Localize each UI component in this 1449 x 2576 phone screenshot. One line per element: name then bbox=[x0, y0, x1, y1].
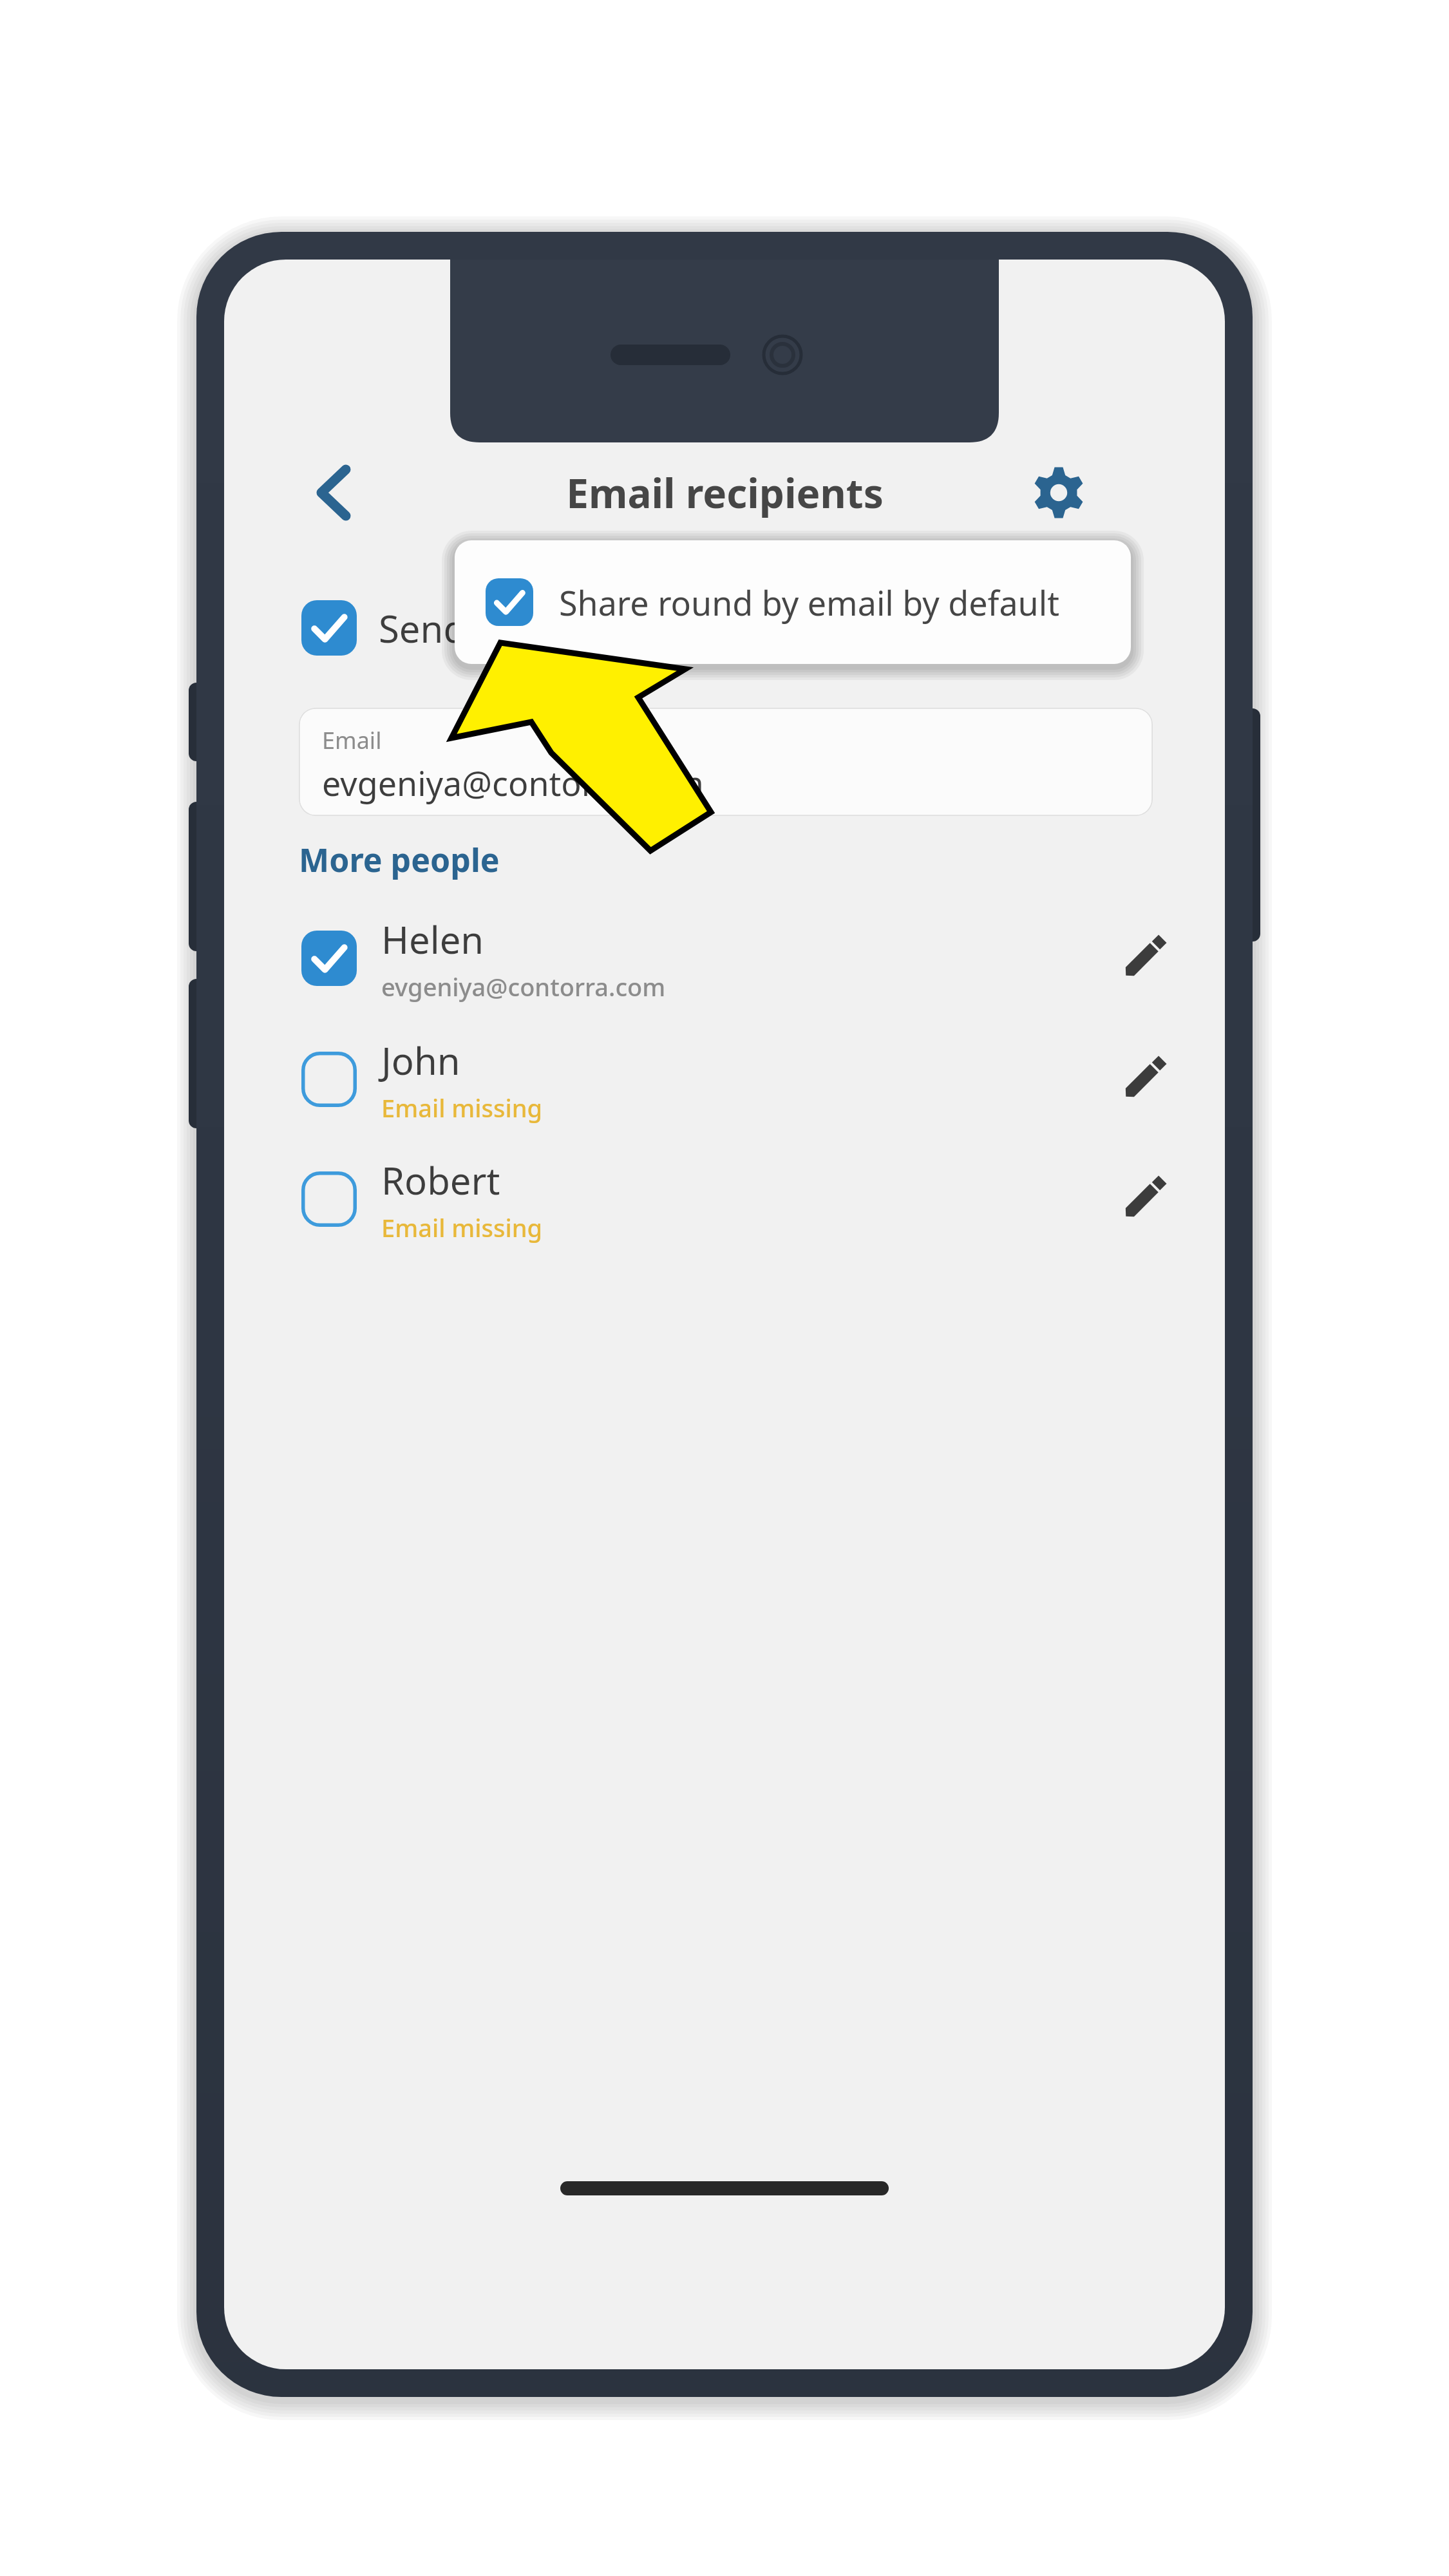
button[interactable]: Email bbox=[299, 708, 1153, 816]
button[interactable]: Back bbox=[292, 454, 370, 531]
staticText: Email bbox=[322, 724, 382, 756]
button[interactable]: Edit Robert bbox=[1101, 1157, 1185, 1241]
staticText: Email recipients bbox=[566, 466, 884, 520]
staticText: More people bbox=[299, 838, 500, 882]
staticText: evgeniya@contorra.com bbox=[381, 970, 666, 1003]
button[interactable]: Edit John bbox=[1101, 1037, 1185, 1121]
button[interactable]: Send me a copy bbox=[301, 589, 881, 667]
button[interactable]: Edit Helen bbox=[1101, 916, 1185, 1000]
button[interactable]: Robert bbox=[224, 1144, 1225, 1254]
button[interactable]: Share round by email by default bbox=[455, 540, 1131, 664]
staticText: Email missing bbox=[381, 1211, 543, 1244]
staticText: Send me a copy bbox=[379, 603, 654, 654]
button[interactable]: Helen bbox=[224, 904, 1225, 1013]
staticText: evgeniya@contorra.com bbox=[322, 760, 704, 806]
staticText: Robert bbox=[381, 1155, 500, 1206]
button[interactable]: John bbox=[224, 1025, 1225, 1134]
staticText: Share round by email by default bbox=[559, 580, 1059, 625]
staticText: Email missing bbox=[381, 1091, 543, 1124]
button[interactable]: Settings bbox=[1020, 454, 1097, 531]
button[interactable]: More people bbox=[299, 838, 500, 882]
staticText: Helen bbox=[381, 914, 484, 965]
staticText: John bbox=[381, 1035, 460, 1086]
